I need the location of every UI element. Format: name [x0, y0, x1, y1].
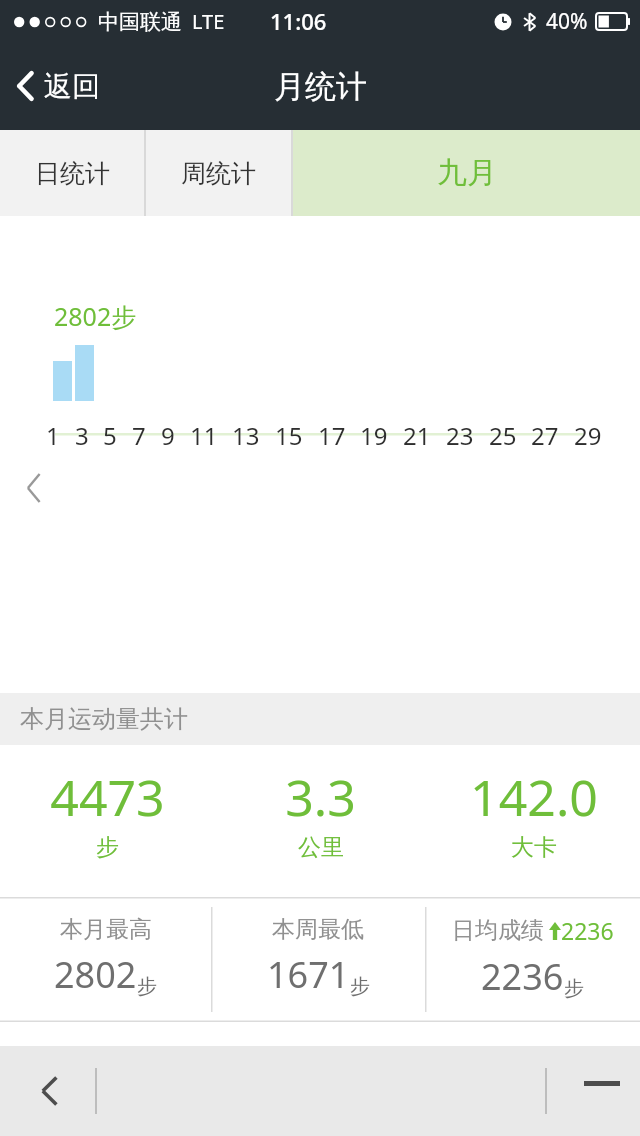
staticText: 21 [403, 419, 431, 452]
staticText: 4473 [50, 763, 165, 831]
staticText: 9 [161, 419, 175, 452]
staticText: 2236 [481, 952, 564, 1001]
button[interactable]: 3.3 [214, 745, 427, 897]
staticText: 步 [96, 833, 119, 862]
staticText: 步 [137, 974, 157, 999]
staticText: 15 [275, 419, 303, 452]
staticText: 11:06 [270, 6, 327, 36]
button[interactable]: 142.0 [427, 745, 640, 897]
staticText: 3.3 [285, 763, 356, 831]
button[interactable]: 周统计 [146, 130, 291, 216]
staticText: 步 [564, 976, 584, 1001]
button[interactable]: 本周最低 [211, 897, 425, 1022]
staticText: 步 [350, 974, 370, 999]
staticText: 29 [574, 419, 602, 452]
staticText: 周统计 [181, 158, 256, 189]
button[interactable]: 本月最高 [0, 897, 211, 1022]
staticText: 大卡 [511, 833, 557, 862]
staticText: 19 [360, 419, 388, 452]
staticText: 2236 [561, 915, 614, 946]
staticText: 17 [318, 419, 346, 452]
button[interactable]: Menu [574, 1063, 630, 1119]
staticText: 40% [546, 7, 588, 36]
staticText: 公里 [298, 833, 344, 862]
staticText: LTE [192, 8, 225, 35]
button[interactable]: 返回 [0, 42, 116, 130]
staticText: 本月运动量共计 [20, 704, 188, 734]
button[interactable]: 九月 [293, 130, 640, 216]
staticText: 1 [46, 419, 60, 452]
staticText: 13 [232, 419, 260, 452]
staticText: 11 [190, 419, 218, 452]
staticText: 月统计 [274, 67, 367, 106]
staticText: 本月最高 [60, 915, 152, 944]
button[interactable]: 日均成绩 [425, 897, 640, 1022]
staticText: 九月 [437, 154, 497, 192]
staticText: 7 [132, 419, 146, 452]
button[interactable]: 4473 [0, 745, 214, 897]
staticText: 23 [446, 419, 474, 452]
staticText: 142.0 [470, 763, 598, 831]
staticText: 3 [75, 419, 89, 452]
staticText: 5 [103, 419, 117, 452]
staticText: 2802步 [54, 299, 137, 333]
button[interactable]: 日统计 [0, 130, 144, 216]
staticText: 返回 [44, 69, 100, 104]
button[interactable]: Back [22, 1063, 78, 1119]
staticText: 日均成绩 [452, 916, 544, 945]
button[interactable]: 上一月 [14, 464, 54, 512]
staticText: 本周最低 [272, 915, 364, 944]
staticText: 2802 [54, 950, 137, 999]
staticText: 27 [531, 419, 559, 452]
staticText: 25 [489, 419, 517, 452]
staticText: 1671 [267, 950, 350, 999]
staticText: 中国联通 [98, 9, 182, 35]
staticText: 日统计 [35, 158, 110, 189]
